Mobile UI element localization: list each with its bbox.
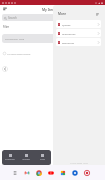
staticText: Close — [40, 158, 45, 161]
button[interactable]: Permission Type — [2, 34, 103, 43]
button[interactable]: App 3 — [45, 165, 57, 180]
button[interactable]: Screenshot — [2, 150, 18, 165]
button[interactable]: Filter — [94, 11, 100, 17]
button[interactable]: Filter — [2, 6, 8, 12]
staticText: Institutions — [62, 32, 76, 35]
staticText: No data were found — [7, 52, 31, 55]
button[interactable]: App 0 — [9, 165, 21, 180]
staticText: Resources — [62, 41, 75, 44]
button[interactable]: Previous page — [2, 66, 8, 72]
button[interactable]: Close — [34, 150, 50, 165]
staticText: v1.0.0 build 1234 — [70, 162, 88, 165]
staticText: Filter — [3, 25, 10, 29]
staticText: My Item — [42, 7, 56, 12]
button[interactable]: Quotes — [56, 20, 101, 28]
staticText: Search — [8, 16, 17, 20]
button[interactable]: Search — [2, 14, 103, 21]
staticText: Screenshot — [5, 158, 15, 161]
button[interactable]: App 5 — [69, 165, 81, 180]
button[interactable]: Institutions — [56, 29, 101, 37]
button[interactable]: App 1 — [21, 165, 33, 180]
button[interactable]: Multiwin — [18, 150, 34, 165]
button[interactable]: App 6 — [81, 165, 93, 180]
button[interactable]: App 4 — [57, 165, 69, 180]
staticText: Quotes — [62, 23, 71, 26]
button[interactable]: Resources — [56, 38, 101, 46]
staticText: Permission Type — [5, 37, 25, 40]
staticText: Multiwin — [22, 158, 30, 161]
staticText: More — [58, 12, 66, 16]
button[interactable]: App 2 — [33, 165, 45, 180]
